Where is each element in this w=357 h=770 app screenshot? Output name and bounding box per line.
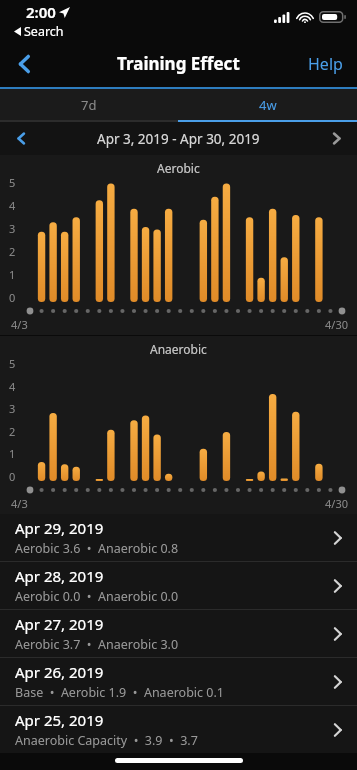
button[interactable]: Next period [317, 122, 357, 155]
staticText: Apr 25, 2019 [15, 710, 104, 730]
staticText: Apr 26, 2019 [15, 662, 104, 682]
staticText: 4/30 [325, 317, 348, 332]
staticText: Aerobic [157, 160, 200, 176]
staticText: 3 [9, 401, 16, 416]
button[interactable]: 7d [0, 89, 178, 120]
staticText: Aerobic 3.6 • Anaerobic 0.8 [15, 540, 179, 557]
staticText: 3 [9, 221, 16, 236]
button[interactable]: Previous period [0, 122, 40, 155]
staticText: Anaerobic Capacity • 3.9 • 3.7 [15, 732, 198, 749]
staticText: 7d [81, 96, 97, 114]
button[interactable]: Back [0, 41, 46, 87]
staticText: Apr 3, 2019 - Apr 30, 2019 [97, 130, 260, 148]
button[interactable]: Apr 28, 2019 [0, 562, 357, 609]
staticText: Base • Aerobic 1.9 • Anaerobic 0.1 [15, 684, 224, 701]
button[interactable]: 4w [178, 89, 357, 120]
staticText: 1 [9, 446, 16, 461]
staticText: Apr 27, 2019 [15, 614, 104, 634]
staticText: Help [308, 53, 343, 75]
staticText: 5 [9, 175, 16, 190]
staticText: 2 [9, 244, 16, 259]
staticText: 1 [9, 267, 16, 282]
staticText: 4 [9, 379, 16, 394]
staticText: Apr 28, 2019 [15, 566, 104, 586]
staticText: 0 [9, 469, 16, 484]
staticText: 4w [259, 96, 277, 114]
button[interactable]: Help [294, 41, 357, 87]
staticText: 2 [9, 424, 16, 439]
button[interactable]: Apr 27, 2019 [0, 610, 357, 657]
button[interactable]: Apr 29, 2019 [0, 514, 357, 561]
staticText: 4/3 [11, 317, 28, 332]
staticText: Apr 29, 2019 [15, 518, 104, 538]
staticText: Training Effect [117, 52, 240, 75]
button[interactable]: Apr 26, 2019 [0, 658, 357, 705]
staticText: Search [24, 23, 64, 40]
staticText: 2:00 [26, 2, 56, 22]
button[interactable]: Apr 25, 2019 [0, 706, 357, 753]
staticText: 4/3 [11, 496, 28, 511]
staticText: Aerobic 3.7 • Anaerobic 3.0 [15, 636, 179, 653]
staticText: 0 [9, 290, 16, 305]
staticText: 4 [9, 198, 16, 213]
staticText: 5 [9, 356, 16, 371]
staticText: Anaerobic [150, 341, 207, 357]
staticText: Aerobic 0.0 • Anaerobic 0.0 [15, 588, 179, 605]
staticText: 4/30 [325, 496, 348, 511]
